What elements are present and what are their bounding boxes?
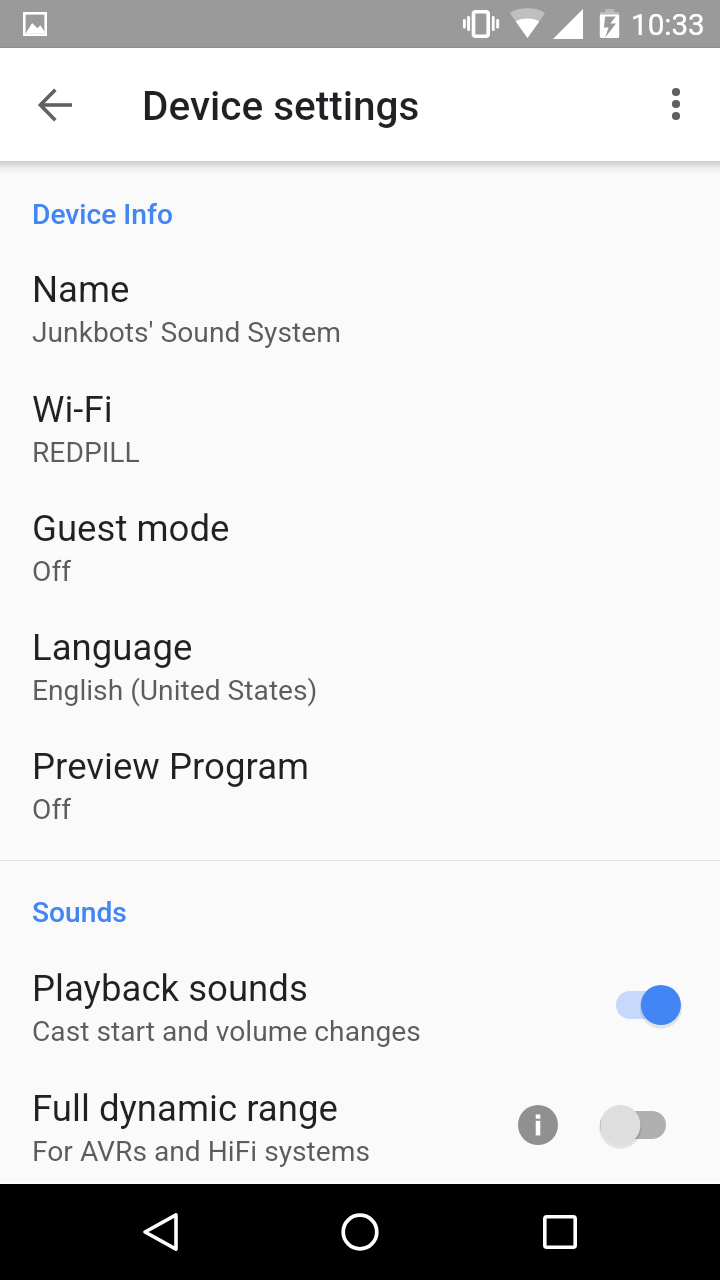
staticText: English (United States) [32, 674, 318, 707]
staticText: Junkbots' Sound System [32, 316, 341, 349]
staticText: Device Info [32, 198, 173, 231]
staticText: Cast start and volume changes [32, 1015, 421, 1048]
staticText: For AVRs and HiFi systems [32, 1135, 371, 1168]
button[interactable]: Home [320, 1192, 400, 1272]
button[interactable]: Guest mode [0, 491, 720, 595]
button[interactable]: More information [518, 1105, 558, 1145]
button[interactable]: Playback sounds on [590, 979, 690, 1031]
staticText: REDPILL [32, 436, 140, 469]
staticText: Playback sounds [32, 967, 308, 1010]
staticText: Off [32, 555, 71, 588]
staticText: Preview Program [32, 745, 310, 788]
button[interactable]: Full dynamic range [0, 1071, 720, 1175]
button[interactable]: Recent apps [520, 1192, 600, 1272]
staticText: Device settings [142, 82, 420, 129]
staticText: Off [32, 793, 71, 826]
button[interactable]: Language [0, 610, 720, 714]
staticText: Name [32, 268, 130, 311]
staticText: Sounds [32, 896, 127, 929]
button[interactable]: Wi-Fi [0, 372, 720, 476]
button[interactable]: Back [120, 1192, 200, 1272]
button[interactable]: Navigate up [28, 77, 84, 133]
staticText: Language [32, 626, 193, 669]
button[interactable]: Full dynamic range off [590, 1099, 690, 1151]
button[interactable]: Playback sounds [0, 951, 720, 1055]
button[interactable]: Preview Program [0, 729, 720, 833]
button[interactable]: Name [0, 252, 720, 356]
staticText: Wi-Fi [32, 388, 113, 431]
staticText: 10:33 [631, 8, 705, 43]
staticText: Guest mode [32, 507, 230, 550]
button[interactable]: More options [648, 76, 704, 132]
staticText: Full dynamic range [32, 1087, 338, 1130]
